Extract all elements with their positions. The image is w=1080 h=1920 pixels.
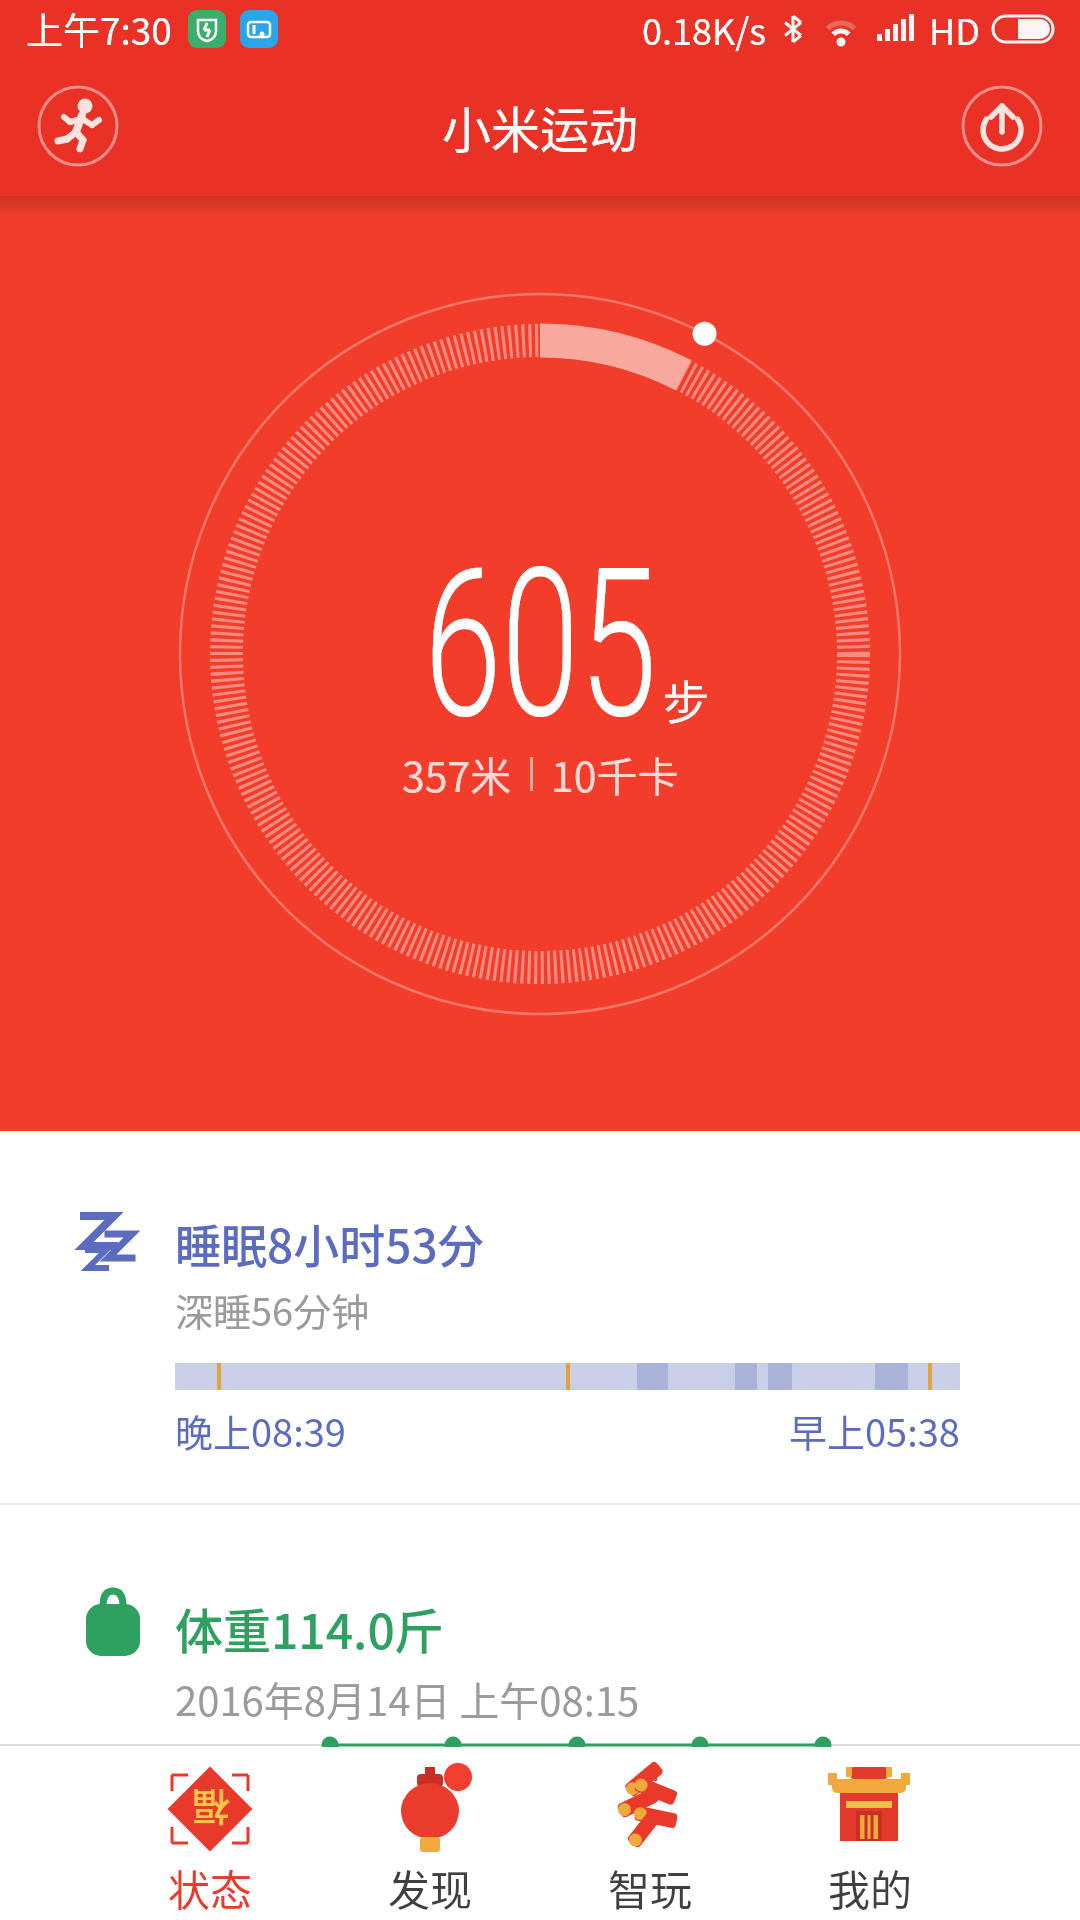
button[interactable]: 体重114.0斤 <box>0 1505 1080 1747</box>
button[interactable]: 福 <box>100 1747 320 1920</box>
staticText: 晚上08:39 <box>175 1403 346 1458</box>
button[interactable]: 发现 <box>320 1747 540 1920</box>
staticText: 步 <box>663 666 709 733</box>
staticText: 深睡56分钟 <box>175 1282 370 1337</box>
staticText: HD <box>929 3 980 55</box>
staticText: 睡眠8小时53分 <box>175 1210 484 1277</box>
staticText: 小米运动 <box>442 91 639 162</box>
staticText: 605 <box>424 524 657 765</box>
staticText: 357米 <box>402 744 512 803</box>
button[interactable]: 智玩 <box>540 1747 760 1920</box>
button[interactable] <box>960 84 1044 168</box>
staticText: 早上05:38 <box>789 1403 960 1458</box>
staticText: 我的 <box>828 1857 913 1918</box>
staticText: 状态 <box>168 1857 253 1918</box>
button[interactable] <box>36 84 120 168</box>
staticText: 上午7:30 <box>26 2 172 56</box>
staticText: 发现 <box>388 1857 473 1918</box>
staticText: 0.18K/s <box>642 3 767 55</box>
button[interactable]: 睡眠8小时53分 <box>0 1131 1080 1505</box>
staticText: 智玩 <box>608 1857 693 1918</box>
button[interactable]: 我的 <box>760 1747 980 1920</box>
staticText: 10千卡 <box>551 744 679 803</box>
staticText: 2016年8月14日 上午08:15 <box>175 1670 640 1728</box>
staticText: 体重114.0斤 <box>175 1593 443 1663</box>
staticText: 福 <box>191 1782 230 1837</box>
